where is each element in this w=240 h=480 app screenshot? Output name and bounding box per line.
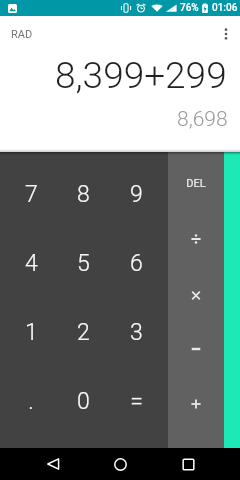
button[interactable]: 3	[110, 298, 163, 367]
staticText: .	[28, 388, 34, 415]
button[interactable]: Subtract	[168, 321, 224, 376]
staticText: 4	[25, 250, 38, 277]
staticText: 8,698	[177, 107, 228, 132]
button[interactable]: 4	[5, 229, 57, 298]
staticText: 1	[25, 319, 38, 346]
staticText: 0	[77, 388, 90, 415]
button[interactable]: Back	[36, 448, 68, 480]
button[interactable]: 6	[110, 229, 163, 298]
staticText: =	[130, 388, 143, 415]
staticText: 9	[130, 181, 143, 208]
staticText: 8,399+299	[55, 54, 227, 97]
button[interactable]: 2	[57, 298, 110, 367]
button[interactable]: 0	[57, 367, 110, 436]
button[interactable]: Add	[168, 376, 224, 431]
button[interactable]: 7	[5, 160, 57, 229]
button[interactable]: More options	[209, 17, 240, 51]
button[interactable]: Divide	[168, 211, 224, 266]
staticText: 8	[77, 181, 90, 208]
staticText: 76%	[180, 2, 199, 14]
button[interactable]: .	[5, 367, 57, 436]
button[interactable]: Recent apps	[172, 448, 204, 480]
button[interactable]: 9	[110, 160, 163, 229]
button[interactable]: 1	[5, 298, 57, 367]
button[interactable]: 8	[57, 160, 110, 229]
staticText: 2	[77, 319, 90, 346]
staticText: 6	[130, 250, 143, 277]
button[interactable]: Home	[104, 448, 136, 480]
button[interactable]: 5	[57, 229, 110, 298]
staticText: DEL	[186, 177, 206, 190]
button[interactable]: Multiply	[168, 266, 224, 321]
button[interactable]: DEL	[168, 155, 224, 211]
button[interactable]: Equals	[224, 152, 240, 448]
staticText: 3	[130, 319, 143, 346]
staticText: 7	[25, 181, 38, 208]
staticText: 01:06	[212, 2, 238, 14]
staticText: RAD	[11, 28, 33, 41]
staticText: 5	[77, 250, 90, 277]
button[interactable]: =	[110, 367, 163, 436]
